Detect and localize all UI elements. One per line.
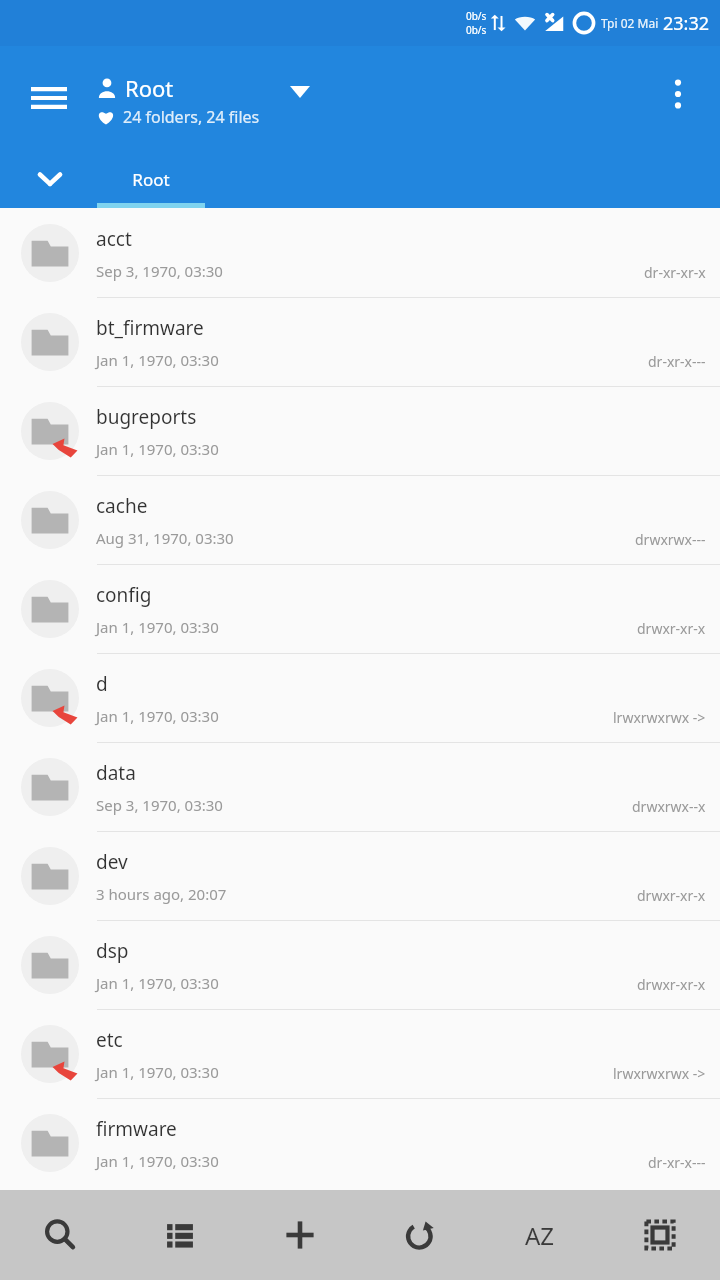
staticText: Jan 1, 1970, 03:30 <box>96 973 219 993</box>
staticText: acct <box>96 226 132 252</box>
staticText: 23:32 <box>663 11 710 36</box>
button[interactable]: Open navigation drawer <box>18 67 80 129</box>
staticText: lrwxrwxrwx -> <box>613 1064 706 1083</box>
staticText: Root <box>125 73 174 103</box>
staticText: dr-xr-x--- <box>648 1153 706 1172</box>
button[interactable]: bt_firmware <box>0 297 720 386</box>
staticText: config <box>96 582 152 608</box>
staticText: Sep 3, 1970, 03:30 <box>96 261 223 281</box>
staticText: d <box>96 671 108 697</box>
staticText: Jan 1, 1970, 03:30 <box>96 706 219 726</box>
staticText: dr-xr-x--- <box>648 352 706 371</box>
staticText: etc <box>96 1027 123 1053</box>
staticText: 0b/s <box>466 23 487 37</box>
staticText: firmware <box>96 1116 177 1142</box>
staticText: bt_firmware <box>96 315 204 341</box>
staticText: drwxr-xr-x <box>637 619 706 638</box>
staticText: drwxrwx--x <box>632 797 706 816</box>
button[interactable]: Change storage <box>276 68 324 116</box>
button[interactable]: Select all <box>600 1190 720 1280</box>
staticText: data <box>96 760 136 786</box>
staticText: drwxr-xr-x <box>637 886 706 905</box>
button[interactable]: Root <box>97 150 205 208</box>
button[interactable]: Create new <box>240 1190 360 1280</box>
staticText: drwxrwx--- <box>635 530 706 549</box>
button[interactable]: d <box>0 653 720 742</box>
button[interactable]: cache <box>0 475 720 564</box>
button[interactable]: List view <box>120 1190 240 1280</box>
staticText: lrwxrwxrwx -> <box>613 708 706 727</box>
button[interactable]: data <box>0 742 720 831</box>
staticText: Tpi 02 Mai <box>601 15 659 31</box>
button[interactable]: More options <box>650 66 706 122</box>
button[interactable]: Expand tabs <box>22 151 78 207</box>
staticText: AZ <box>525 1219 555 1252</box>
staticText: 0b/s <box>466 9 487 23</box>
button[interactable]: dev <box>0 831 720 920</box>
staticText: Jan 1, 1970, 03:30 <box>96 350 219 370</box>
staticText: dr-xr-xr-x <box>644 263 706 282</box>
button[interactable]: Search <box>0 1190 120 1280</box>
staticText: Jan 1, 1970, 03:30 <box>96 617 219 637</box>
staticText: Jan 1, 1970, 03:30 <box>96 1062 219 1082</box>
staticText: Sep 3, 1970, 03:30 <box>96 795 223 815</box>
staticText: cache <box>96 493 148 519</box>
staticText: dsp <box>96 938 129 964</box>
staticText: bugreports <box>96 404 197 430</box>
button[interactable]: Refresh <box>360 1190 480 1280</box>
staticText: Aug 31, 1970, 03:30 <box>96 528 234 548</box>
button[interactable]: config <box>0 564 720 653</box>
staticText: Jan 1, 1970, 03:30 <box>96 439 219 459</box>
button[interactable]: firmware <box>0 1098 720 1187</box>
staticText: Jan 1, 1970, 03:30 <box>96 1151 219 1171</box>
staticText: dev <box>96 849 128 875</box>
staticText: drwxr-xr-x <box>637 975 706 994</box>
staticText: 24 folders, 24 files <box>123 106 260 128</box>
button[interactable]: Sort alphabetically <box>480 1190 600 1280</box>
button[interactable]: acct <box>0 208 720 297</box>
staticText: Root <box>132 168 170 191</box>
button[interactable]: etc <box>0 1009 720 1098</box>
button[interactable]: dsp <box>0 920 720 1009</box>
button[interactable]: bugreports <box>0 386 720 475</box>
staticText: 3 hours ago, 20:07 <box>96 884 227 904</box>
